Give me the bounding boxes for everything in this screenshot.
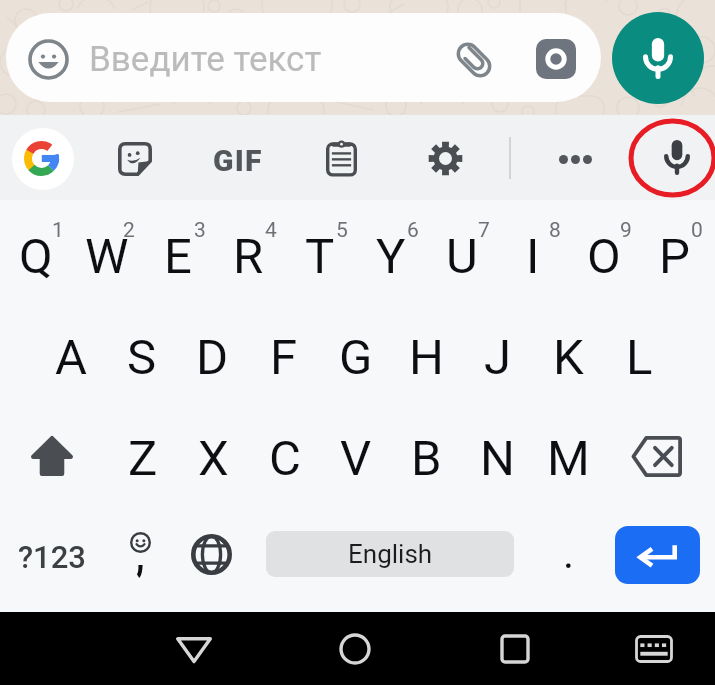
button[interactable]: Stickers	[103, 115, 167, 200]
button[interactable]: Y	[355, 206, 426, 306]
button[interactable]: Q	[0, 206, 71, 306]
button[interactable]: Attach	[452, 38, 496, 82]
staticText: 3	[194, 218, 206, 243]
button[interactable]: Z	[107, 406, 178, 506]
button[interactable]: Home	[324, 612, 386, 685]
button[interactable]: P	[639, 206, 710, 306]
button[interactable]: G	[320, 306, 391, 406]
button[interactable]: Voice typing	[645, 115, 709, 200]
staticText: U	[446, 228, 478, 285]
button[interactable]: W	[71, 206, 142, 306]
staticText: E	[164, 228, 192, 285]
staticText: L	[626, 329, 653, 386]
button[interactable]: A	[35, 306, 106, 406]
staticText: F	[270, 329, 298, 386]
staticText: 9	[620, 218, 632, 243]
button[interactable]: English	[266, 531, 514, 577]
staticText: N	[480, 430, 515, 487]
staticText: A	[55, 329, 87, 386]
button[interactable]: S	[106, 306, 177, 406]
button[interactable]: Enter	[615, 526, 700, 584]
button[interactable]: Keyboard	[623, 612, 685, 685]
staticText: 6	[407, 218, 419, 243]
button[interactable]: E	[142, 206, 213, 306]
staticText: 7	[478, 218, 490, 243]
staticText: H	[409, 329, 444, 386]
staticText: R	[233, 228, 264, 285]
staticText: 0	[691, 218, 703, 243]
button[interactable]: U	[426, 206, 497, 306]
button[interactable]: Settings	[413, 115, 477, 200]
staticText: .	[563, 529, 575, 578]
button[interactable]: H	[391, 306, 462, 406]
button[interactable]: K	[533, 306, 604, 406]
button[interactable]: I	[497, 206, 568, 306]
button[interactable]: Shift	[16, 406, 87, 506]
staticText: G	[339, 329, 373, 386]
button[interactable]: Recent apps	[484, 612, 546, 685]
button[interactable]: .	[533, 506, 604, 606]
button[interactable]: Emoji	[6, 13, 601, 102]
staticText: ?123	[18, 539, 86, 575]
staticText: V	[340, 430, 372, 487]
staticText: 5	[336, 218, 348, 243]
staticText: 4	[265, 218, 277, 243]
button[interactable]: Change language	[176, 506, 247, 606]
staticText: K	[553, 329, 584, 386]
button[interactable]: Google search	[12, 128, 74, 190]
button[interactable]: Backspace	[621, 406, 692, 506]
button[interactable]: B	[391, 406, 462, 506]
button[interactable]: J	[462, 306, 533, 406]
staticText: I	[526, 228, 540, 285]
staticText: M	[547, 430, 590, 487]
button[interactable]: T	[284, 206, 355, 306]
button[interactable]: N	[462, 406, 533, 506]
staticText: 8	[549, 218, 561, 243]
button[interactable]: More options	[543, 115, 607, 200]
staticText: T	[305, 228, 335, 285]
button[interactable]: X	[178, 406, 249, 506]
staticText: J	[484, 329, 512, 386]
staticText: P	[659, 228, 690, 285]
staticText: English	[348, 539, 433, 569]
button[interactable]: ?123	[10, 506, 94, 606]
staticText: D	[196, 329, 229, 386]
staticText: Q	[19, 228, 53, 285]
button[interactable]: L	[604, 306, 675, 406]
button[interactable]: C	[249, 406, 320, 506]
button[interactable]: V	[320, 406, 391, 506]
button[interactable]: R	[213, 206, 284, 306]
button[interactable]: GIF	[206, 118, 270, 203]
staticText: S	[127, 329, 157, 386]
button[interactable]: Emoji	[28, 39, 69, 80]
staticText: GIF	[213, 143, 263, 178]
button[interactable]: F	[248, 306, 319, 406]
staticText: B	[411, 430, 442, 487]
staticText: 2	[123, 218, 135, 243]
button[interactable]: O	[568, 206, 639, 306]
button[interactable]: M	[533, 406, 604, 506]
button[interactable]: Record voice message	[612, 12, 704, 104]
staticText: W	[85, 228, 129, 285]
button[interactable]: Camera	[533, 36, 579, 82]
button[interactable]: Back	[163, 612, 225, 685]
staticText: C	[269, 430, 301, 487]
staticText: X	[198, 430, 229, 487]
button[interactable]: Emoji and comma	[105, 506, 176, 606]
staticText: 1	[52, 218, 64, 243]
staticText: Y	[376, 228, 406, 285]
button[interactable]: D	[177, 306, 248, 406]
staticText: Введите текст	[89, 39, 322, 80]
staticText: O	[587, 228, 621, 285]
staticText: Z	[128, 430, 158, 487]
button[interactable]: Clipboard	[309, 115, 373, 200]
